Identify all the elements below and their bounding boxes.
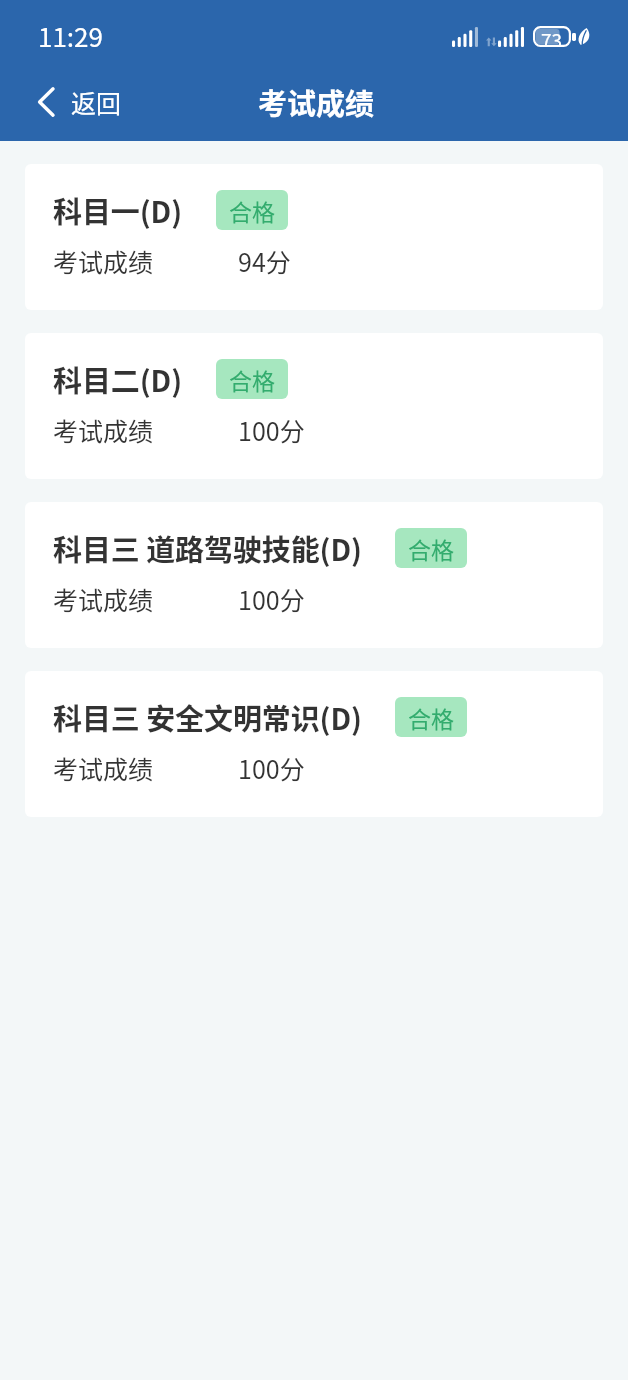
staticText: 合格: [408, 532, 454, 565]
staticText: 94分: [238, 243, 291, 279]
button[interactable]: 科目一(D): [25, 164, 603, 310]
staticText: 科目三 道路驾驶技能(D): [53, 527, 362, 569]
staticText: 100分: [238, 581, 305, 617]
staticText: 考试成绩: [53, 581, 238, 617]
staticText: 合格: [408, 701, 454, 734]
staticText: 考试成绩: [53, 412, 238, 448]
staticText: 合格: [229, 194, 275, 227]
staticText: 返回: [71, 84, 122, 120]
staticText: 100分: [238, 750, 305, 786]
button[interactable]: 返回: [0, 74, 142, 130]
staticText: 合格: [229, 363, 275, 396]
staticText: 11:29: [38, 17, 103, 55]
staticText: 考试成绩: [53, 243, 238, 279]
staticText: 100分: [238, 412, 305, 448]
staticText: 科目三 安全文明常识(D): [53, 696, 362, 738]
staticText: 考试成绩: [53, 750, 238, 786]
staticText: 考试成绩: [258, 81, 375, 123]
button[interactable]: 科目三 道路驾驶技能(D): [25, 502, 603, 648]
button[interactable]: 科目二(D): [25, 333, 603, 479]
staticText: 73: [541, 26, 563, 45]
staticText: 科目一(D): [53, 189, 183, 231]
button[interactable]: 科目三 安全文明常识(D): [25, 671, 603, 817]
staticText: 科目二(D): [53, 358, 183, 400]
